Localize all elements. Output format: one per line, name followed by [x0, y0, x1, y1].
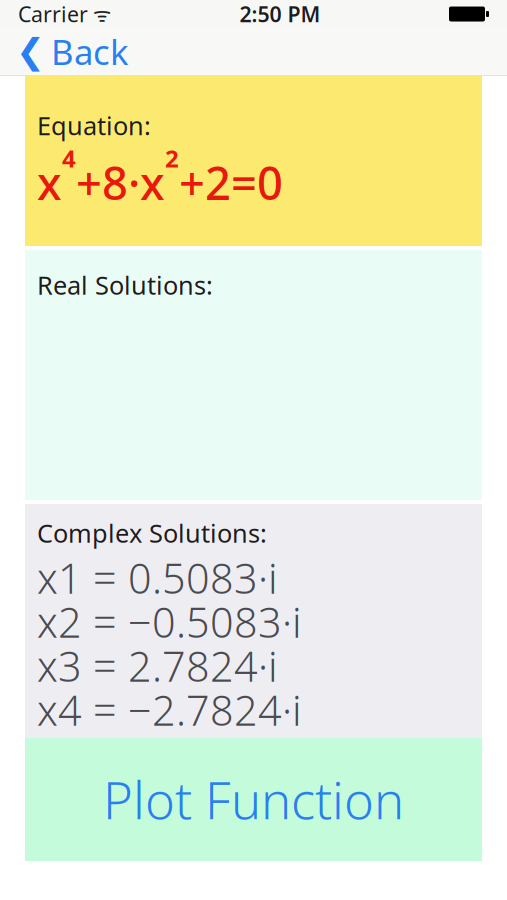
staticText: ᯤ [88, 1, 111, 27]
staticText: 2:50 PM [239, 0, 320, 28]
staticText: Complex Solutions: [37, 516, 267, 550]
staticText: +8·x [76, 152, 165, 212]
staticText: Carrier [18, 0, 88, 28]
staticText: +2=0 [179, 152, 283, 212]
staticText: x2 = −0.5083·i [37, 594, 302, 649]
staticText: Equation: [37, 109, 151, 142]
staticText: x4 = −2.7824·i [37, 682, 302, 737]
staticText: ❮ [16, 32, 45, 71]
staticText: x [37, 152, 62, 212]
staticText: x1 = 0.5083·i [37, 550, 278, 605]
staticText: x3 = 2.7824·i [37, 638, 278, 693]
staticText: Real Solutions: [37, 268, 213, 302]
staticText: Back [51, 28, 129, 74]
button[interactable]: ❮ [0, 28, 141, 75]
staticText: 2 [165, 142, 179, 174]
staticText: Plot Function [103, 766, 404, 833]
staticText: 4 [62, 142, 76, 174]
button[interactable]: Plot Function [25, 738, 482, 861]
